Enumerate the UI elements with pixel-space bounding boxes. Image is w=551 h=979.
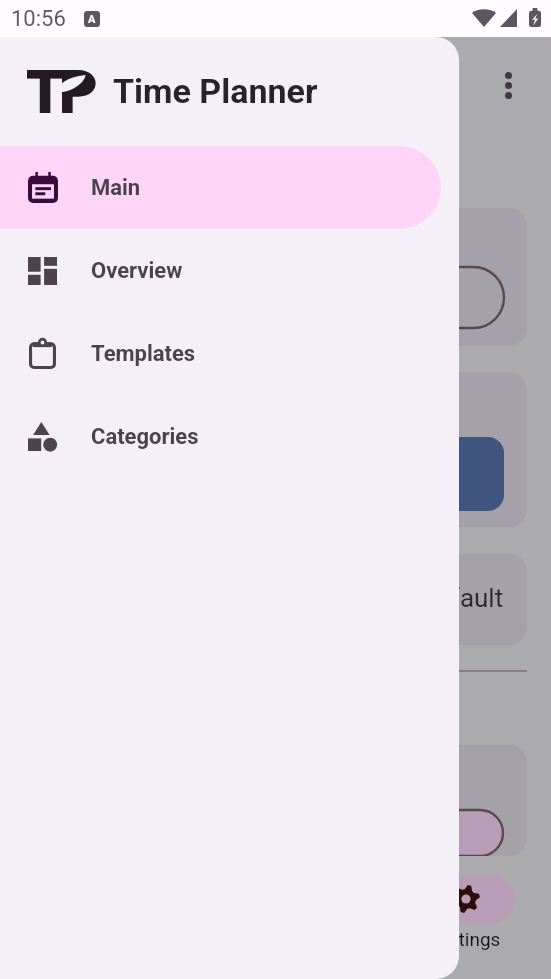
staticText: Categories <box>91 424 199 450</box>
staticText: Main <box>91 175 141 201</box>
button[interactable]: Overview <box>0 229 441 312</box>
button[interactable]: Categories <box>0 395 441 478</box>
button[interactable]: Templates <box>0 312 441 395</box>
button[interactable]: More options <box>486 63 530 107</box>
button[interactable]: Main <box>0 146 441 229</box>
staticText: Settings <box>431 928 501 950</box>
staticText: 10:56 <box>11 6 66 32</box>
staticText: Templates <box>91 341 196 367</box>
staticText: Time Planner <box>113 71 318 111</box>
staticText: Overview <box>91 258 183 284</box>
staticText: Default <box>420 583 504 613</box>
staticText: A <box>88 13 96 26</box>
button[interactable]: Settings <box>411 875 521 950</box>
